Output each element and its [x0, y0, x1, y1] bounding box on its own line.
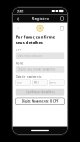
button[interactable]: Ano	[49, 80, 64, 85]
staticText: CPF	[16, 48, 21, 51]
button[interactable]: Digite Novamente O CPF	[16, 98, 64, 105]
staticText: Registro	[31, 16, 48, 21]
button[interactable]: Menu	[58, 15, 65, 22]
button[interactable]: Documento	[59, 26, 64, 31]
staticText: ★	[39, 27, 41, 30]
staticText: Dia	[17, 81, 21, 84]
staticText: ‹	[17, 14, 19, 23]
staticText: Mês	[34, 81, 39, 84]
staticText: 9:41	[16, 8, 23, 14]
staticText: Nome	[16, 62, 24, 65]
button[interactable]: Confirmar detalhes	[16, 89, 64, 96]
button[interactable]: Mês	[32, 80, 47, 85]
staticText: Ano	[50, 81, 56, 84]
staticText: 000.000.000-00	[17, 54, 42, 57]
button[interactable]: Voltar	[14, 15, 21, 22]
button[interactable]: Dia	[16, 80, 31, 85]
staticText: Por favor, confirme seus detalhes	[16, 34, 55, 45]
staticText: ✓	[17, 26, 20, 30]
staticText: Digite seu nome completo	[17, 68, 55, 71]
staticText: Data de nascimento	[16, 75, 42, 79]
staticText: Confirmar detalhes	[25, 90, 54, 94]
staticText: Digite Novamente O CPF	[22, 100, 58, 103]
button[interactable]: Progresso	[16, 26, 21, 31]
